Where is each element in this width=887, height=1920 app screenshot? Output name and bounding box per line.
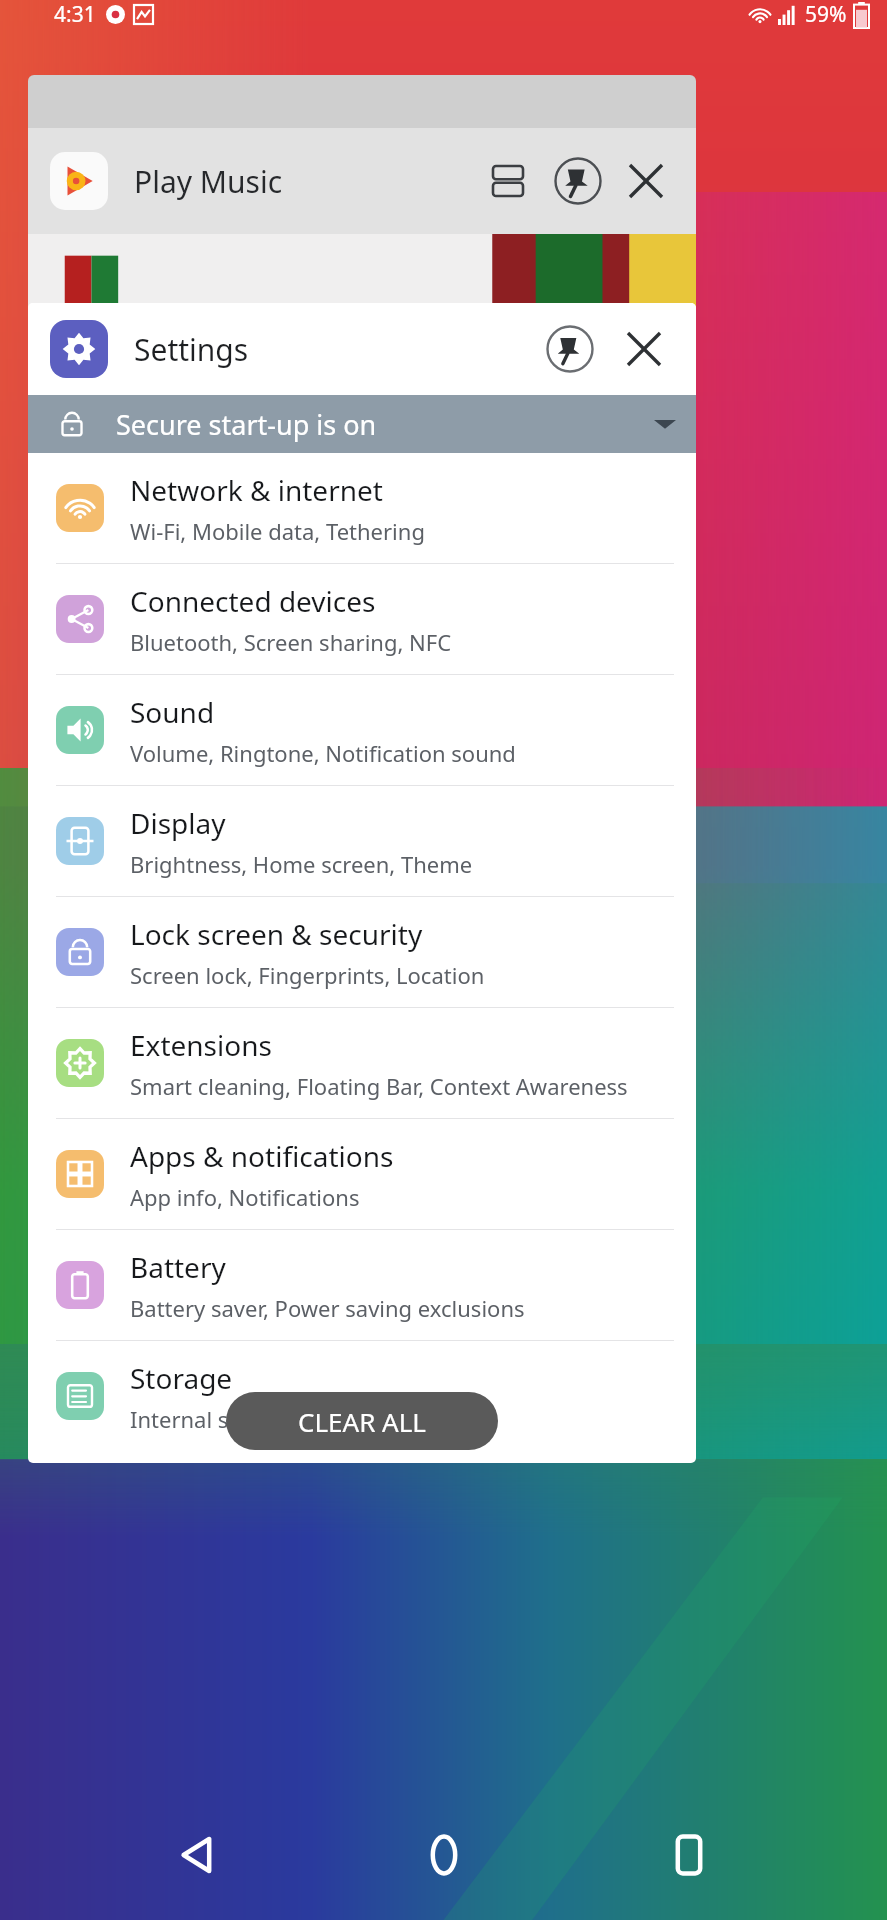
- button[interactable]: Battery: [28, 1230, 696, 1340]
- staticText: Play Music: [134, 161, 283, 202]
- button[interactable]: Split screen: [480, 153, 536, 209]
- button[interactable]: Network & internet: [28, 453, 696, 563]
- button[interactable]: Recents: [641, 1807, 737, 1903]
- staticText: Settings: [134, 329, 249, 370]
- staticText: Screen lock, Fingerprints, Location: [130, 960, 485, 990]
- staticText: Lock screen & security: [130, 915, 423, 953]
- button[interactable]: Extensions: [28, 1008, 696, 1118]
- button[interactable]: Play Music: [28, 128, 696, 234]
- staticText: Battery saver, Power saving exclusions: [130, 1293, 525, 1323]
- staticText: Extensions: [130, 1026, 272, 1064]
- staticText: Brightness, Home screen, Theme: [130, 849, 473, 879]
- staticText: Display: [130, 804, 226, 842]
- button[interactable]: Pin Settings: [540, 319, 600, 379]
- staticText: CLEAR ALL: [298, 1404, 426, 1439]
- staticText: Volume, Ringtone, Notification sound: [130, 738, 516, 768]
- staticText: Storage: [130, 1359, 233, 1397]
- button[interactable]: Secure start-up is on: [28, 395, 696, 453]
- staticText: Sound: [130, 693, 215, 731]
- button[interactable]: Back: [150, 1807, 246, 1903]
- staticText: Network & internet: [130, 471, 383, 509]
- button[interactable]: CLEAR ALL: [226, 1392, 498, 1450]
- button[interactable]: Home: [396, 1807, 492, 1903]
- staticText: 4:31: [54, 0, 96, 29]
- button[interactable]: Display: [28, 786, 696, 896]
- staticText: Apps & notifications: [130, 1137, 394, 1175]
- staticText: App info, Notifications: [130, 1182, 360, 1212]
- button[interactable]: Close Settings: [614, 319, 674, 379]
- button[interactable]: Storage: [28, 1341, 696, 1451]
- button[interactable]: Pin: [550, 153, 606, 209]
- staticText: Battery: [130, 1248, 226, 1286]
- staticText: Wi-Fi, Mobile data, Tethering: [130, 516, 425, 546]
- button[interactable]: Settings: [28, 303, 696, 395]
- staticText: Secure start-up is on: [116, 406, 377, 443]
- button[interactable]: Apps & notifications: [28, 1119, 696, 1229]
- button[interactable]: Sound: [28, 675, 696, 785]
- staticText: 59%: [805, 0, 847, 29]
- staticText: Connected devices: [130, 582, 376, 620]
- button[interactable]: Connected devices: [28, 564, 696, 674]
- staticText: Bluetooth, Screen sharing, NFC: [130, 627, 452, 657]
- staticText: Internal storage: [130, 1404, 297, 1434]
- staticText: Smart cleaning, Floating Bar, Context Aw…: [130, 1071, 628, 1101]
- button[interactable]: Lock screen & security: [28, 897, 696, 1007]
- button[interactable]: Close Play Music: [618, 153, 674, 209]
